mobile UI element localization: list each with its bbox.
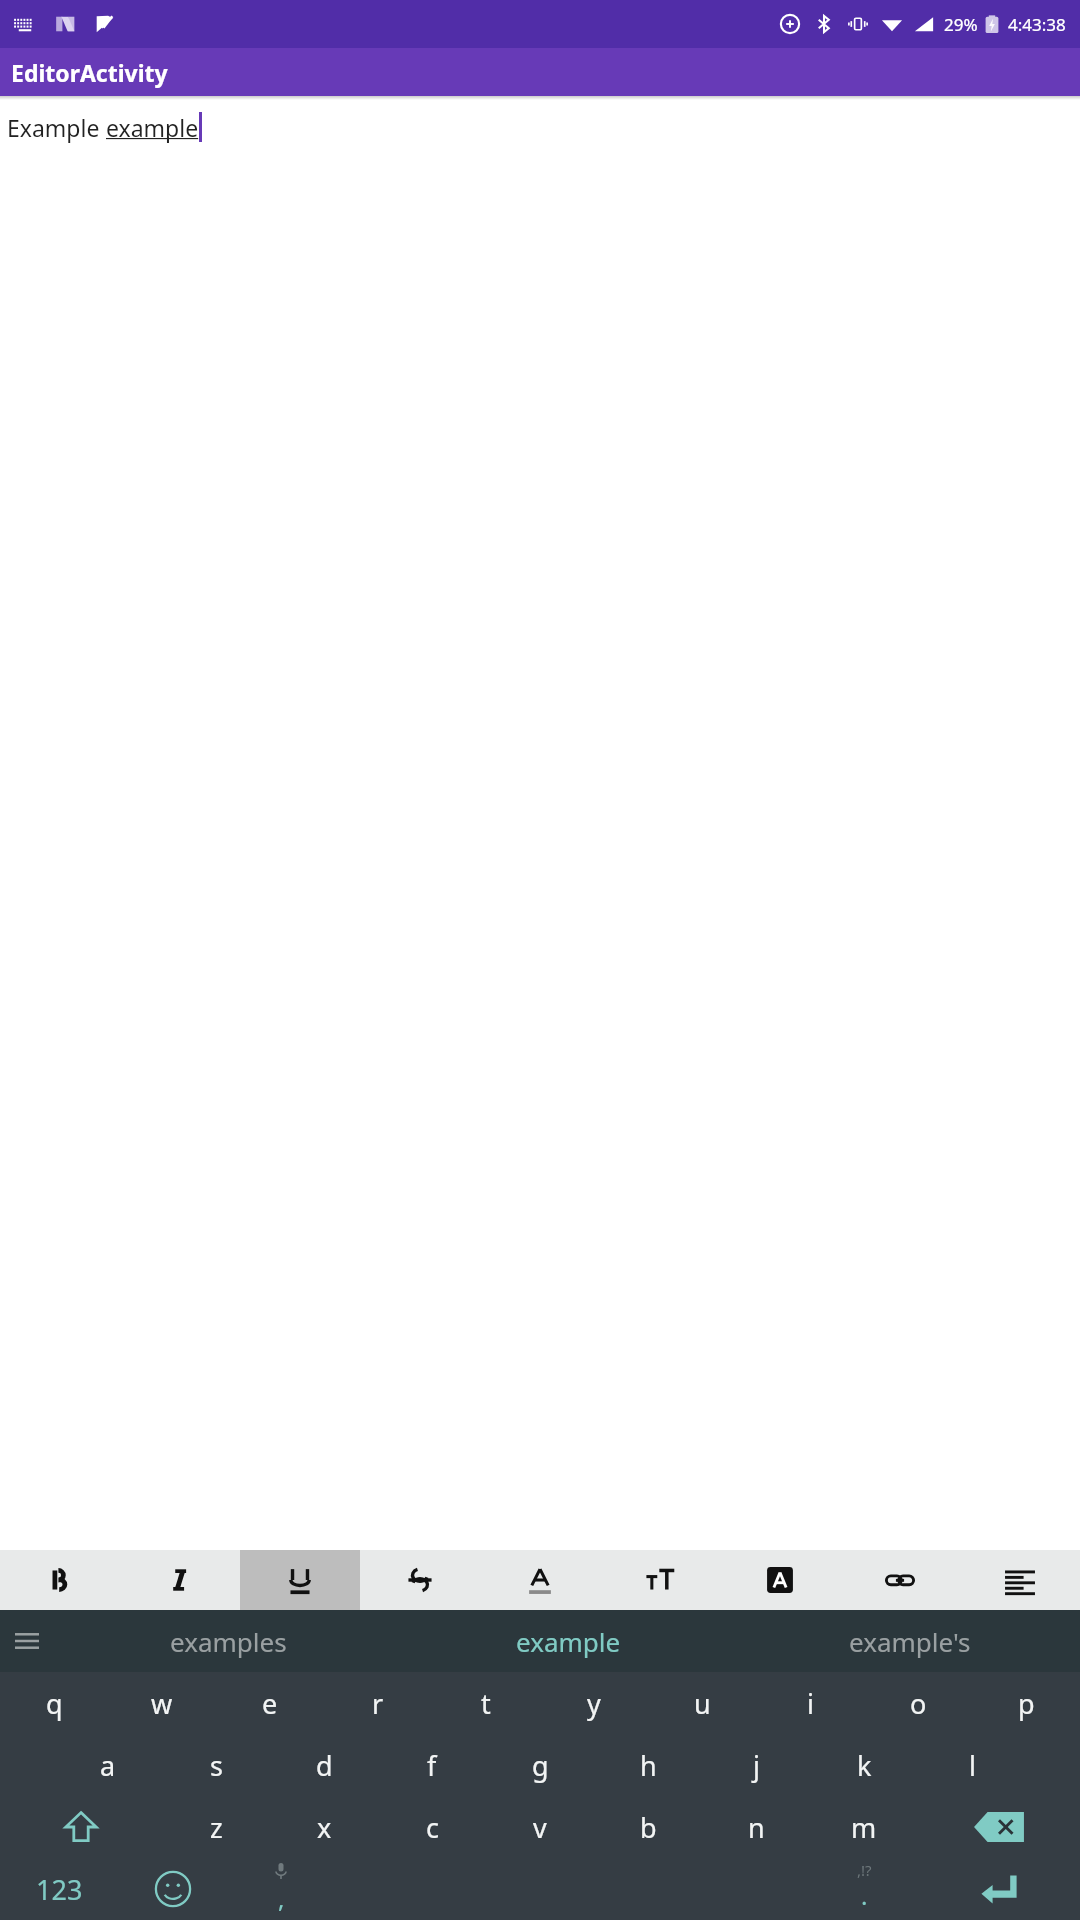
staticText: ,!? [857,1860,872,1880]
button[interactable]: i [756,1672,864,1734]
button[interactable]: l [918,1734,1026,1796]
button[interactable]: j [702,1734,810,1796]
button[interactable]: example [398,1610,739,1672]
button[interactable]: Emoji [119,1858,227,1920]
staticText: Example [7,112,106,143]
staticText: c [426,1809,439,1846]
button[interactable]: k [810,1734,918,1796]
button[interactable]: t [432,1672,540,1734]
button[interactable]: m [810,1796,918,1858]
staticText: x [317,1809,332,1846]
button[interactable]: v [486,1796,594,1858]
button[interactable]: w [108,1672,216,1734]
staticText: w [151,1685,173,1722]
button[interactable]: p [972,1672,1080,1734]
button[interactable]: Text size [600,1550,720,1610]
button[interactable]: Shift [0,1796,162,1858]
staticText: t [481,1685,491,1722]
button[interactable]: b [594,1796,702,1858]
staticText: EditorActivity [11,57,168,88]
button[interactable]: 123 [0,1858,119,1920]
staticText: g [532,1747,549,1784]
button[interactable]: d [270,1734,378,1796]
button[interactable]: Italic [120,1550,240,1610]
staticText: a [100,1747,116,1784]
button[interactable]: Comma and voice input [227,1858,335,1920]
staticText: 29% [944,13,978,36]
button[interactable]: n [702,1796,810,1858]
button[interactable]: example's [739,1610,1080,1672]
staticText: i [807,1685,814,1722]
staticText: f [427,1747,437,1784]
button[interactable]: r [324,1672,432,1734]
button[interactable]: q [0,1672,108,1734]
staticText: h [640,1747,657,1784]
staticText: l [969,1747,976,1784]
button[interactable]: Text color [480,1550,600,1610]
button[interactable]: Insert link [840,1550,960,1610]
staticText: example [516,1624,621,1659]
staticText: 4:43:38 [1008,13,1066,36]
staticText: k [857,1747,872,1784]
staticText: n [748,1809,765,1846]
button[interactable]: Strikethrough [360,1550,480,1610]
button[interactable]: z [162,1796,270,1858]
button[interactable]: EditorActivity [0,48,1080,96]
staticText: p [1018,1685,1035,1722]
button[interactable]: c [378,1796,486,1858]
button[interactable]: Background color [720,1550,840,1610]
staticText: u [694,1685,711,1722]
staticText: r [372,1685,384,1722]
button[interactable]: examples [58,1610,398,1672]
button[interactable]: Underline [240,1550,360,1610]
staticText: example's [849,1624,971,1659]
button[interactable]: Align [960,1550,1080,1610]
staticText: v [533,1809,547,1846]
button[interactable]: f [378,1734,486,1796]
staticText: j [753,1747,760,1784]
button[interactable]: g [486,1734,594,1796]
staticText: m [851,1809,877,1846]
button[interactable]: a [54,1734,162,1796]
staticText: e [262,1685,278,1722]
button[interactable]: B [0,1550,120,1610]
button[interactable]: h [594,1734,702,1796]
staticText: b [640,1809,657,1846]
button[interactable]: y [540,1672,648,1734]
staticText: q [46,1685,63,1722]
staticText: s [210,1747,223,1784]
staticText: y [587,1685,601,1722]
button[interactable]: o [864,1672,972,1734]
button[interactable]: Menu [0,1614,54,1668]
staticText: , [278,1882,285,1915]
button[interactable]: e [216,1672,324,1734]
button[interactable]: Period [810,1858,918,1920]
staticText: 123 [36,1871,83,1908]
button[interactable]: x [270,1796,378,1858]
staticText: . [861,1879,868,1912]
staticText: d [316,1747,333,1784]
button[interactable]: s [162,1734,270,1796]
button[interactable]: Enter [918,1858,1080,1920]
button[interactable]: Backspace [918,1796,1080,1858]
staticText: example [106,112,199,143]
staticText: o [910,1685,927,1722]
staticText: z [210,1809,223,1846]
staticText: examples [170,1624,287,1659]
button[interactable]: u [648,1672,756,1734]
